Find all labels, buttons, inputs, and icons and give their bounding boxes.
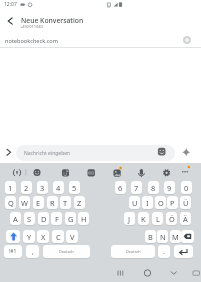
button[interactable]	[183, 36, 191, 44]
staticText: K	[141, 214, 146, 224]
button[interactable]: O	[155, 196, 166, 210]
staticText: V	[70, 232, 75, 242]
button[interactable]: ,	[26, 245, 39, 259]
button[interactable]: 4	[53, 181, 64, 195]
button[interactable]	[179, 166, 192, 179]
staticText: 7	[134, 183, 139, 193]
button[interactable]: 8	[148, 181, 159, 195]
staticText: Y	[27, 232, 32, 242]
button[interactable]: !#1	[4, 245, 22, 259]
button[interactable]: E	[33, 196, 44, 210]
button[interactable]	[135, 166, 148, 179]
staticText: Deutsch	[59, 249, 74, 254]
button[interactable]: G	[65, 212, 76, 226]
staticText: U	[132, 198, 138, 208]
button[interactable]: L	[152, 212, 163, 226]
staticText: I	[146, 198, 149, 208]
button[interactable]: M	[170, 230, 181, 244]
button[interactable]	[31, 166, 44, 179]
staticText: Neue Konversation	[21, 16, 84, 25]
staticText: G	[68, 214, 74, 224]
button[interactable]: Ö	[166, 212, 177, 226]
staticText: 6	[118, 183, 123, 193]
button[interactable]: 5	[69, 181, 80, 195]
staticText: C	[56, 232, 61, 242]
button[interactable]	[11, 166, 24, 179]
button[interactable]: 1	[5, 181, 16, 195]
button[interactable]	[180, 146, 192, 158]
staticText: Ü	[183, 198, 189, 208]
staticText: +492011040	[20, 24, 43, 29]
staticText: 4	[56, 183, 61, 193]
staticText: Z	[77, 198, 82, 208]
button[interactable]	[59, 166, 72, 179]
button[interactable]: Z	[74, 196, 85, 210]
button[interactable]	[166, 265, 182, 281]
button[interactable]	[3, 146, 15, 158]
staticText: 2	[24, 183, 29, 193]
button[interactable]: H	[78, 212, 89, 226]
staticText: Ä	[183, 214, 188, 224]
button[interactable]: C	[52, 230, 64, 244]
button[interactable]: 6	[115, 181, 126, 195]
button[interactable]: R	[47, 196, 58, 210]
button[interactable]	[181, 230, 194, 244]
button[interactable]: V	[66, 230, 78, 244]
staticText: F	[55, 214, 59, 224]
button[interactable]: I	[142, 196, 153, 210]
button[interactable]: W	[19, 196, 30, 210]
staticText: Ö	[169, 214, 175, 224]
staticText: D	[41, 214, 47, 224]
button[interactable]: X	[37, 230, 49, 244]
button[interactable]: J	[124, 212, 135, 226]
staticText: M	[172, 232, 179, 242]
staticText: Q	[8, 198, 14, 208]
button[interactable]: 2	[21, 181, 32, 195]
button[interactable]: 7	[131, 181, 142, 195]
button[interactable]: Y	[23, 230, 35, 244]
button[interactable]	[190, 266, 201, 280]
button[interactable]: N	[157, 230, 168, 244]
staticText: W	[21, 198, 28, 208]
staticText: S	[27, 214, 32, 224]
staticText: !#1	[9, 248, 17, 255]
button[interactable]	[112, 265, 128, 281]
button[interactable]	[140, 265, 156, 281]
staticText: J	[128, 214, 131, 224]
button[interactable]	[174, 245, 193, 259]
button[interactable]	[3, 14, 16, 28]
staticText: L	[156, 214, 160, 224]
button[interactable]	[111, 166, 124, 179]
button[interactable]: Q	[5, 196, 16, 210]
button[interactable]: T	[60, 196, 71, 210]
button[interactable]: A	[10, 212, 21, 226]
staticText: T	[63, 198, 68, 208]
staticText: N	[160, 232, 166, 242]
button[interactable]: 3	[37, 181, 48, 195]
button[interactable]: B	[145, 230, 156, 244]
button[interactable]: Nachricht eingeben	[16, 145, 175, 161]
button[interactable]	[6, 230, 20, 244]
staticText: X	[41, 232, 46, 242]
button[interactable]: Deutsch	[43, 245, 90, 259]
button[interactable]: Deutsch	[111, 245, 155, 259]
button[interactable]: .	[158, 245, 170, 259]
button[interactable]: P	[167, 196, 178, 210]
button[interactable]: Ü	[180, 196, 191, 210]
staticText: E	[36, 198, 41, 208]
button[interactable]: Ä	[180, 212, 191, 226]
staticText: R	[50, 198, 55, 208]
staticText: 0	[184, 183, 189, 193]
staticText: notebookcheck.com	[5, 37, 58, 45]
button[interactable]: F	[51, 212, 62, 226]
button[interactable]: U	[129, 196, 140, 210]
button[interactable]	[160, 166, 173, 179]
button[interactable]: 9	[164, 181, 175, 195]
staticText: O	[158, 198, 164, 208]
button[interactable]	[85, 166, 98, 179]
button[interactable]: S	[24, 212, 35, 226]
button[interactable]: K	[138, 212, 149, 226]
button[interactable]: 0	[181, 181, 192, 195]
staticText: .	[163, 247, 165, 256]
button[interactable]: D	[38, 212, 49, 226]
